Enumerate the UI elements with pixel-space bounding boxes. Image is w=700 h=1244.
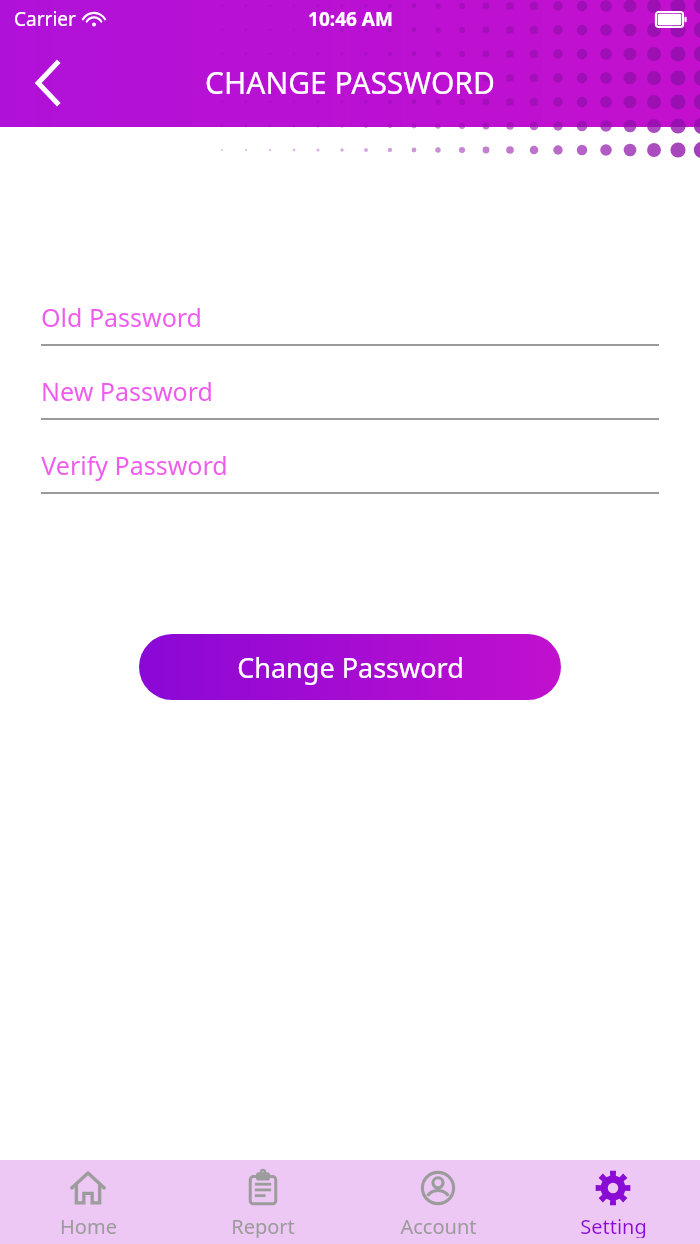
button[interactable]: New Password xyxy=(41,374,659,420)
staticText: Setting xyxy=(580,1213,647,1238)
staticText: Old Password xyxy=(41,300,202,334)
staticText: New Password xyxy=(41,374,213,408)
staticText: Report xyxy=(231,1213,295,1238)
staticText: Verify Password xyxy=(41,448,228,482)
staticText: CHANGE PASSWORD xyxy=(205,62,495,103)
staticText: Home xyxy=(60,1213,117,1238)
button[interactable]: Change Password xyxy=(139,634,561,700)
button[interactable]: Verify Password xyxy=(41,448,659,494)
button[interactable]: Account xyxy=(363,1166,513,1238)
staticText: 10:46 AM xyxy=(308,6,393,32)
button[interactable]: Old Password xyxy=(41,300,659,346)
button[interactable]: Report xyxy=(188,1166,338,1238)
button[interactable]: Setting xyxy=(538,1166,688,1238)
button[interactable]: Home xyxy=(13,1166,163,1238)
staticText: Change Password xyxy=(237,649,464,686)
staticText: Carrier xyxy=(14,6,76,32)
button[interactable]: Back xyxy=(18,53,78,113)
staticText: Account xyxy=(400,1213,477,1238)
